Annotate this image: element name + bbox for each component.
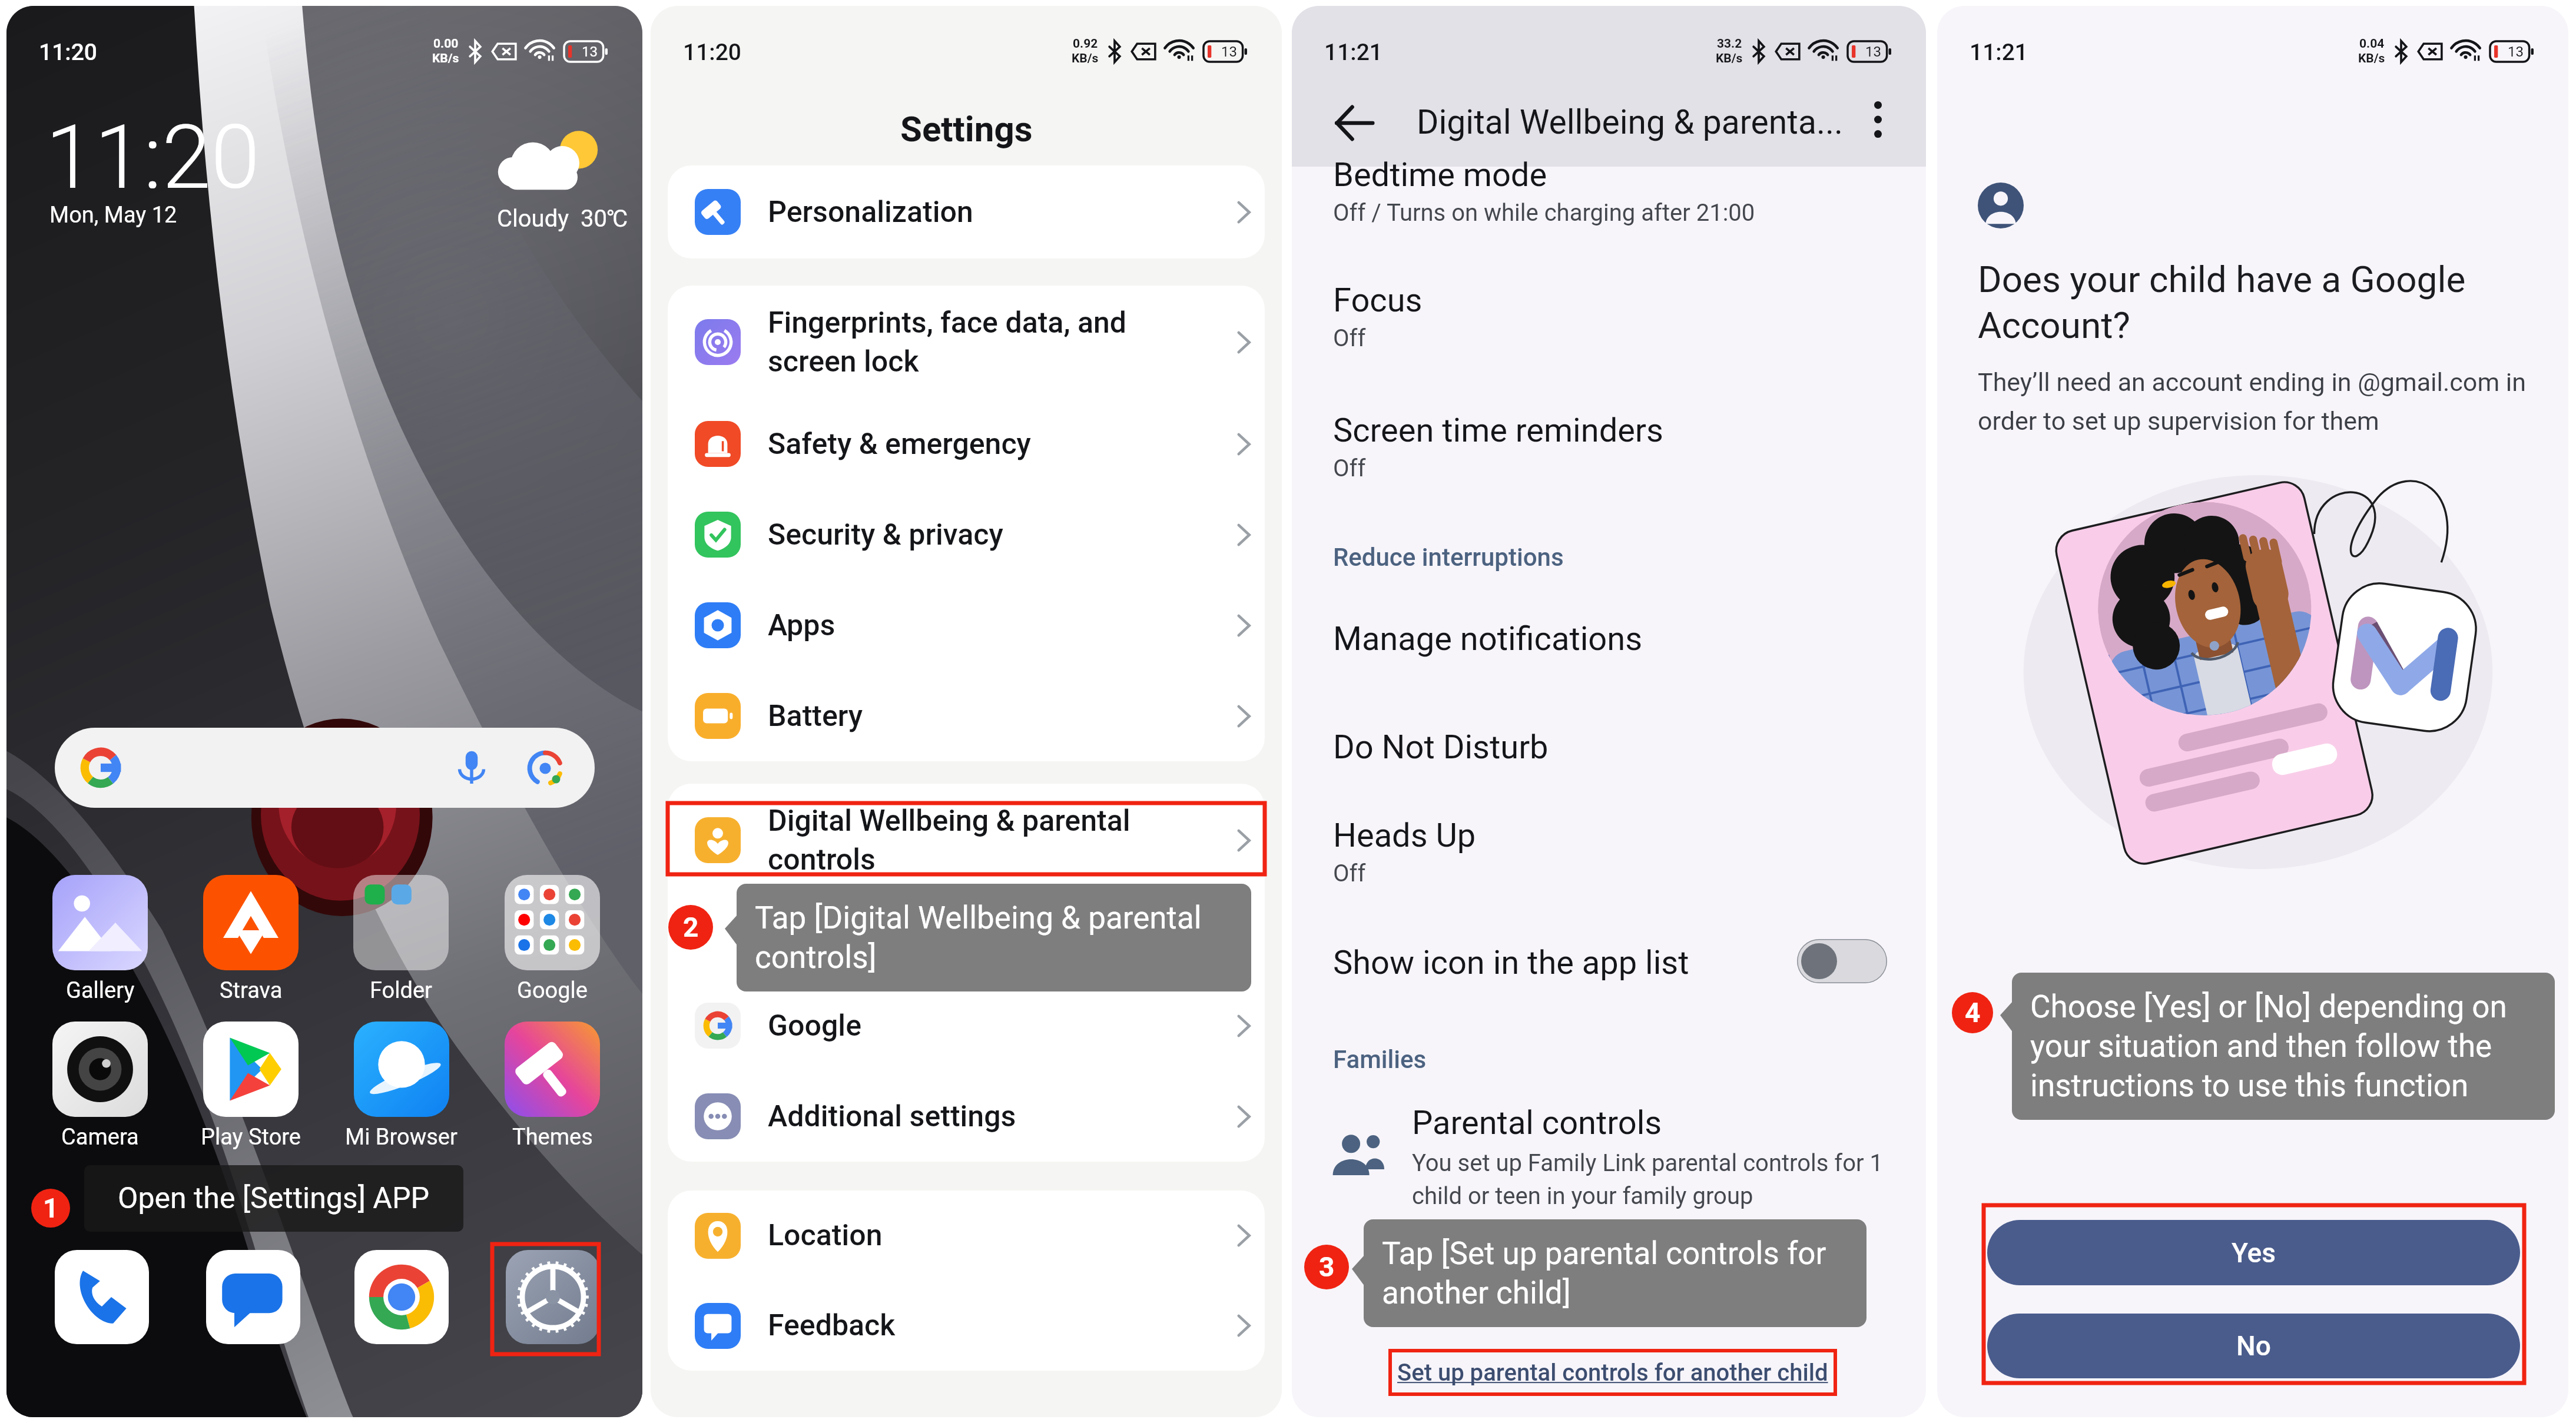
- staticText: 3: [1319, 1251, 1335, 1283]
- staticText: 0.04: [2359, 37, 2385, 51]
- staticText: 13: [1865, 44, 1881, 60]
- staticText: Show icon in the app list: [1333, 943, 1689, 982]
- staticText: Parental controls: [1412, 1103, 1662, 1142]
- button[interactable]: Security & privacy: [668, 489, 1265, 580]
- button[interactable]: Safety & emergency: [668, 399, 1265, 489]
- button[interactable]: Bedtime mode: [1333, 155, 1904, 227]
- staticText: You set up Family Link parental controls…: [1412, 1149, 1890, 1210]
- staticText: 11:20: [39, 39, 98, 66]
- button[interactable]: Battery: [668, 671, 1265, 761]
- staticText: Themes: [512, 1124, 593, 1150]
- staticText: Play Store: [201, 1124, 301, 1150]
- staticText: 0.00: [433, 37, 459, 51]
- button[interactable]: Location: [668, 1190, 1265, 1281]
- staticText: KB/s: [1716, 51, 1743, 66]
- button[interactable]: Focus: [1333, 281, 1904, 352]
- button[interactable]: Manage notifications: [1333, 619, 1904, 658]
- staticText: 11:21: [1324, 39, 1383, 66]
- button[interactable]: Additional settings: [668, 1071, 1265, 1162]
- staticText: Off / Turns on while charging after 21:0…: [1333, 199, 1755, 227]
- button[interactable]: Back: [1328, 97, 1380, 149]
- staticText: Families: [1333, 1045, 1427, 1074]
- staticText: Mi Browser: [345, 1124, 457, 1150]
- button[interactable]: Digital Wellbeing & parental controls: [668, 784, 1265, 897]
- staticText: Tap [Digital Wellbeing & parental contro…: [755, 900, 1233, 976]
- staticText: Manage notifications: [1333, 619, 1643, 658]
- staticText: Yes: [2232, 1237, 2276, 1269]
- staticText: Folder: [370, 977, 432, 1004]
- staticText: 1: [43, 1192, 59, 1224]
- staticText: Bedtime mode: [1333, 155, 1547, 194]
- staticText: Gallery: [66, 977, 135, 1004]
- staticText: Google: [768, 1009, 1192, 1043]
- button[interactable]: [1315, 1092, 1904, 1219]
- staticText: Digital Wellbeing & parenta...: [1417, 102, 1843, 142]
- staticText: Personalization: [768, 195, 1192, 230]
- staticText: Off: [1333, 324, 1366, 352]
- button[interactable]: Do Not Disturb: [1333, 728, 1904, 767]
- staticText: Cloudy 30℃: [497, 205, 628, 233]
- staticText: Apps: [768, 608, 1192, 643]
- button[interactable]: Heads Up: [1333, 816, 1904, 887]
- button[interactable]: Google: [483, 875, 622, 1004]
- staticText: Reduce interruptions: [1333, 543, 1564, 572]
- staticText: Set up parental controls for another chi…: [1397, 1359, 1828, 1387]
- staticText: Mon, May 12: [49, 202, 177, 228]
- staticText: 2: [683, 911, 699, 943]
- staticText: Does your child have a Google Account?: [1978, 258, 2546, 347]
- button[interactable]: Fingerprints, face data, and screen lock: [668, 286, 1265, 399]
- staticText: 13: [1221, 44, 1237, 60]
- button[interactable]: Personalization: [668, 165, 1265, 258]
- button[interactable]: More options: [1854, 96, 1901, 143]
- staticText: 0.92: [1073, 37, 1098, 51]
- staticText: 33.2: [1717, 37, 1742, 51]
- staticText: 11:20: [45, 106, 260, 210]
- button[interactable]: Show icon in the app list: [1292, 928, 1926, 994]
- button[interactable]: Settings: [506, 1250, 600, 1344]
- button[interactable]: Screen time reminders: [1333, 411, 1904, 482]
- staticText: KB/s: [432, 51, 459, 66]
- staticText: KB/s: [1072, 51, 1099, 66]
- button[interactable]: Feedback: [668, 1281, 1265, 1371]
- staticText: Feedback: [768, 1308, 1192, 1343]
- staticText: 11:20: [683, 39, 742, 66]
- button[interactable]: Themes: [483, 1022, 622, 1150]
- button[interactable]: Camera: [31, 1022, 170, 1150]
- staticText: Do Not Disturb: [1333, 728, 1549, 767]
- button[interactable]: Play Store: [181, 1022, 320, 1150]
- staticText: 11:21: [1970, 39, 2028, 66]
- staticText: Choose [Yes] or [No] depending on your s…: [2030, 989, 2537, 1104]
- button[interactable]: Chrome: [354, 1250, 449, 1344]
- button[interactable]: No: [1987, 1314, 2520, 1378]
- button[interactable]: Gallery: [31, 875, 170, 1004]
- button[interactable]: Strava: [181, 875, 320, 1004]
- staticText: Strava: [220, 977, 283, 1004]
- button[interactable]: Yes: [1987, 1220, 2520, 1285]
- staticText: Fingerprints, face data, and screen lock: [768, 306, 1192, 379]
- staticText: Digital Wellbeing & parental controls: [768, 804, 1192, 877]
- staticText: 13: [2508, 44, 2524, 60]
- staticText: Camera: [61, 1124, 139, 1150]
- button[interactable]: Apps: [668, 580, 1265, 671]
- button[interactable]: Messages: [206, 1250, 300, 1344]
- staticText: KB/s: [2358, 51, 2385, 66]
- staticText: Heads Up: [1333, 816, 1476, 855]
- staticText: Security & privacy: [768, 518, 1192, 552]
- staticText: Battery: [768, 699, 1192, 734]
- staticText: 4: [1965, 997, 1981, 1029]
- button[interactable]: Mi Browser: [331, 1022, 470, 1150]
- staticText: Screen time reminders: [1333, 411, 1663, 450]
- staticText: Settings: [900, 108, 1033, 150]
- staticText: Tap [Set up parental controls for anothe…: [1382, 1235, 1848, 1311]
- button[interactable]: Google: [668, 980, 1265, 1071]
- button[interactable]: Google search: [55, 728, 595, 808]
- staticText: Off: [1333, 860, 1366, 887]
- staticText: Off: [1333, 455, 1366, 482]
- staticText: They’ll need an account ending in @gmail…: [1978, 367, 2546, 436]
- staticText: Location: [768, 1218, 1192, 1253]
- button[interactable]: Set up parental controls for another chi…: [1351, 1349, 1875, 1395]
- button[interactable]: Phone: [55, 1250, 149, 1344]
- staticText: Google: [517, 977, 588, 1004]
- staticText: No: [2236, 1330, 2271, 1362]
- button[interactable]: Folder: [331, 875, 470, 1004]
